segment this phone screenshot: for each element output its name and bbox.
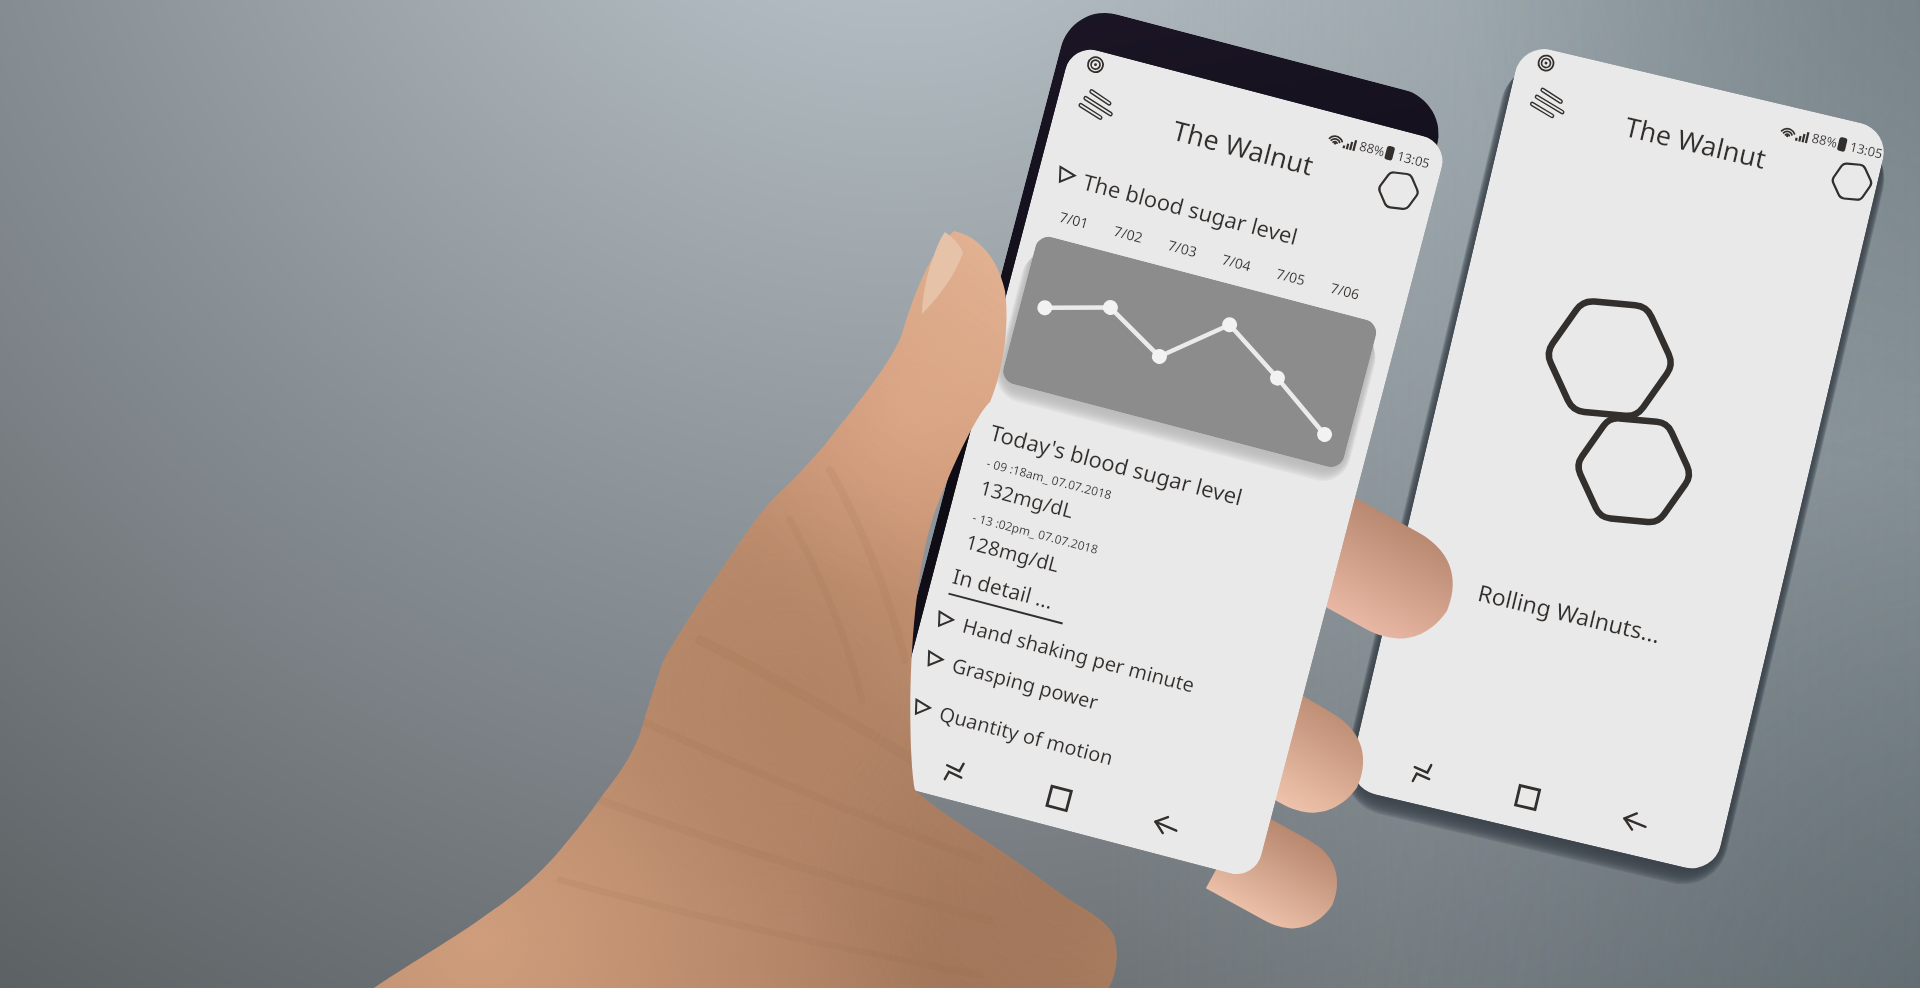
staticText: 7/03 (1166, 235, 1225, 268)
staticText: Grasping power (949, 651, 1101, 716)
staticText: 7/06 (1328, 278, 1387, 310)
staticText: 88% (1810, 128, 1839, 152)
staticText: The Walnut (1169, 111, 1318, 183)
button[interactable]: Walnut logo (1824, 154, 1880, 209)
button[interactable]: Recents (1397, 747, 1448, 798)
staticText: In detail ... (949, 562, 1056, 616)
staticText: 88% (1357, 137, 1387, 161)
button[interactable]: Back (1140, 801, 1191, 852)
staticText: 7/02 (1112, 221, 1171, 254)
staticText: The Walnut (1621, 108, 1770, 177)
button[interactable]: Home (1502, 772, 1553, 823)
button[interactable]: Menu (1076, 86, 1122, 123)
button[interactable]: The blood sugar level (1053, 159, 1301, 251)
staticText: 7/05 (1274, 264, 1333, 296)
button[interactable]: Grasping power (921, 640, 1102, 719)
staticText: Rolling Walnuts... (1475, 576, 1664, 649)
staticText: 13:05 (1848, 137, 1885, 163)
staticText: 128mg/dL (963, 528, 1063, 578)
button[interactable]: Quantity of motion (909, 689, 1118, 774)
staticText: 7/01 (1057, 207, 1116, 239)
staticText: - 09 :18am_ 07.07.2018 (985, 454, 1114, 503)
staticText: 132mg/dL (977, 474, 1077, 524)
button[interactable]: Back (1609, 798, 1660, 848)
staticText: - 13 :02pm_ 07.07.2018 (971, 509, 1101, 557)
button[interactable]: Home (1033, 773, 1085, 824)
button[interactable]: Hand shaking per minute (932, 601, 1199, 701)
button[interactable]: Walnut logo (1370, 163, 1427, 219)
button[interactable]: Menu (1528, 85, 1574, 121)
staticText: 13:05 (1395, 146, 1433, 172)
button[interactable]: Recents (929, 745, 980, 797)
staticText: Quantity of motion (936, 700, 1116, 771)
staticText: Today's blood sugar level (987, 417, 1246, 512)
staticText: The blood sugar level (1080, 166, 1301, 251)
staticText: Hand shaking per minute (960, 612, 1198, 699)
staticText: 7/04 (1220, 249, 1279, 282)
